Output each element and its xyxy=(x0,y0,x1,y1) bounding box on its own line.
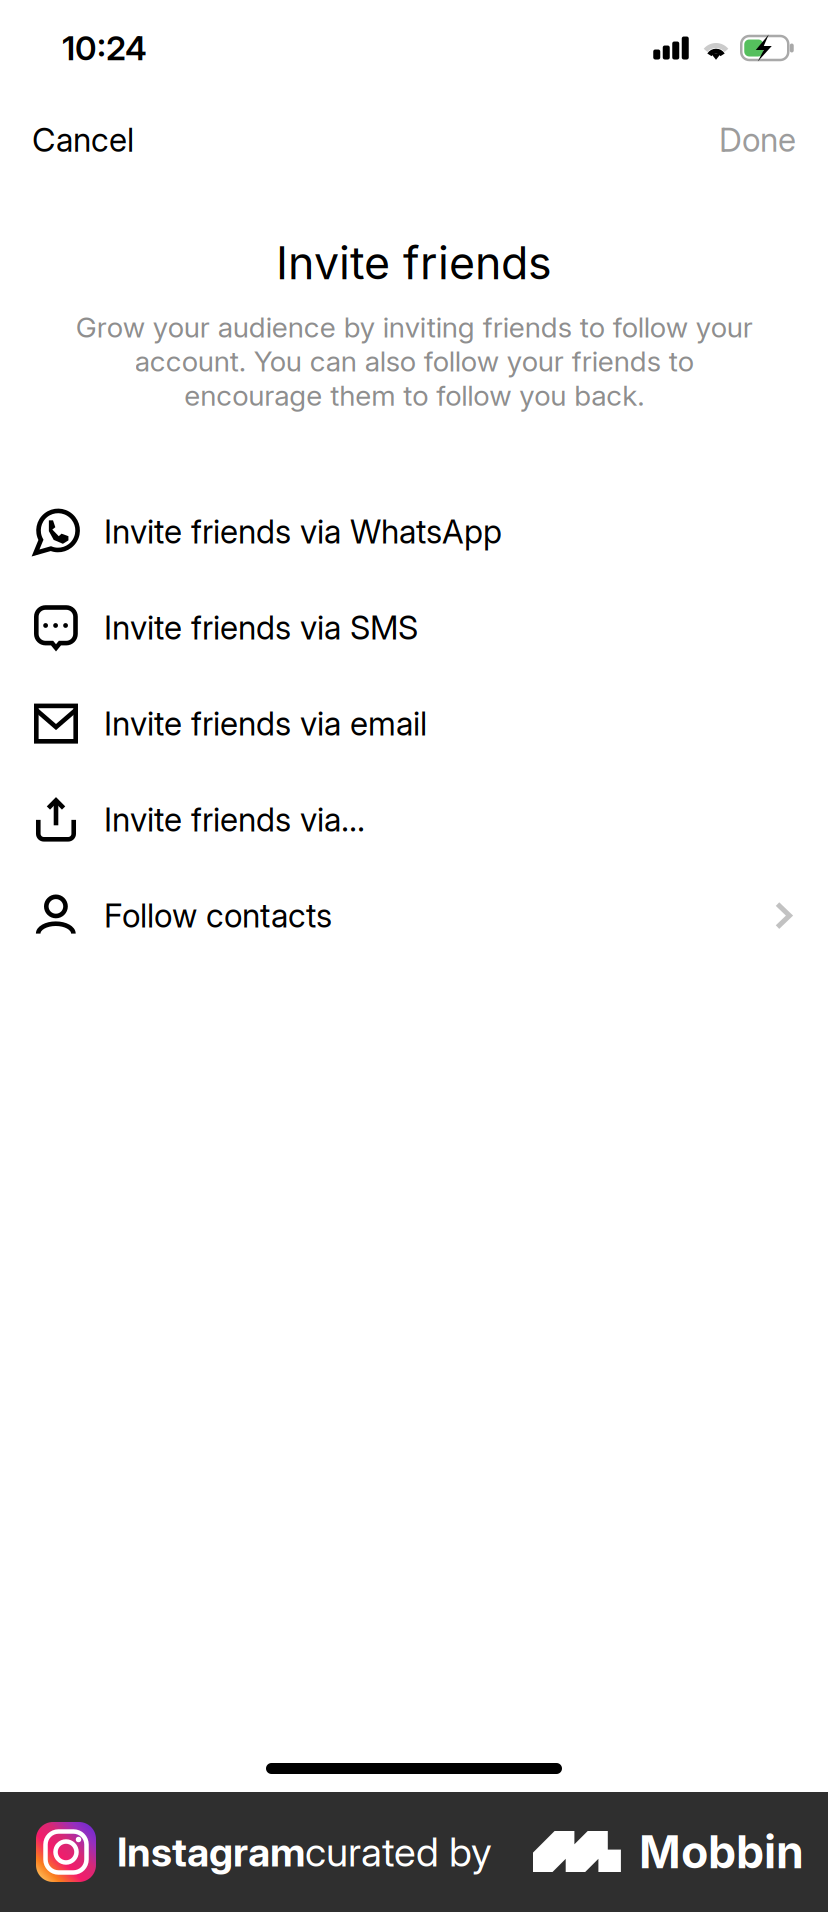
staticText: Invite friends xyxy=(276,236,552,290)
staticText: 10:24 xyxy=(62,28,147,68)
staticText: Invite friends via... xyxy=(104,800,365,839)
staticText: Invite friends via SMS xyxy=(104,608,418,647)
staticText: Grow your audience by inviting friends t… xyxy=(75,310,752,413)
staticText: Invite friends via WhatsApp xyxy=(104,512,502,551)
staticText: Follow contacts xyxy=(104,896,332,935)
staticText: Invite friends via email xyxy=(104,704,427,743)
staticText: Cancel xyxy=(32,120,134,160)
button[interactable]: Invite friends via... xyxy=(0,772,828,868)
staticText: Instagram xyxy=(117,1828,305,1876)
button[interactable]: Invite friends via SMS xyxy=(0,580,828,676)
button[interactable]: Invite friends via WhatsApp xyxy=(0,484,828,580)
staticText: Mobbin xyxy=(639,1825,804,1879)
button[interactable]: Cancel xyxy=(0,96,166,184)
button[interactable]: Follow contacts xyxy=(0,868,828,964)
button[interactable]: Done xyxy=(687,96,828,184)
button[interactable]: Invite friends via email xyxy=(0,676,828,772)
staticText: curated by xyxy=(305,1828,492,1876)
staticText: Done xyxy=(719,120,796,160)
